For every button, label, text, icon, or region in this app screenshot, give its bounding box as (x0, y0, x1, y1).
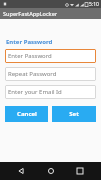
staticText: Repeat Password (8, 70, 57, 78)
button[interactable]: Back (13, 163, 29, 179)
staticText: 5:10 (89, 1, 99, 8)
button[interactable]: Home (43, 163, 59, 179)
button[interactable]: Enter Password (5, 49, 96, 63)
staticText: SuperFastAppLocker (3, 10, 58, 17)
staticText: Enter Password (6, 38, 53, 46)
button[interactable]: Set (52, 106, 96, 122)
button[interactable]: Recent apps (72, 163, 88, 179)
staticText: Enter Password (8, 52, 52, 60)
button[interactable]: Cancel (5, 106, 48, 122)
button[interactable]: Repeat Password (5, 67, 96, 81)
staticText: Enter your Email Id (8, 88, 62, 96)
button[interactable]: Enter your Email Id (5, 85, 96, 99)
staticText: Cancel (17, 110, 37, 118)
staticText: Set (69, 110, 79, 118)
